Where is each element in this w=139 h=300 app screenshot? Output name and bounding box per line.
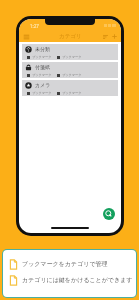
button[interactable]: Sort <box>102 33 109 40</box>
button[interactable]: 付箋紙 <box>22 62 118 78</box>
staticText: ブックマークをカテゴリで管理 <box>22 260 108 268</box>
staticText: ブックマーク <box>32 55 52 59</box>
button[interactable]: Menu <box>23 33 30 40</box>
staticText: ブックマーク <box>62 55 82 59</box>
staticText: カテゴリ <box>59 33 82 40</box>
button[interactable]: Add <box>111 33 118 40</box>
button[interactable]: 未分類 <box>22 44 118 60</box>
staticText: ブックマーク <box>32 73 52 77</box>
staticText: ブックマーク <box>62 91 82 95</box>
staticText: カメラ <box>35 82 51 88</box>
button[interactable]: Search <box>103 208 115 220</box>
staticText: ブックマーク <box>32 91 52 95</box>
button[interactable]: ブックマークをカテゴリで管理 <box>3 256 136 272</box>
staticText: カテゴリには鍵をかけることができます <box>22 276 133 284</box>
staticText: 1:27 <box>30 23 39 29</box>
staticText: 未分類 <box>35 46 50 52</box>
staticText: 付箋紙 <box>35 64 50 70</box>
button[interactable]: カメラ <box>22 80 118 96</box>
button[interactable]: カテゴリには鍵をかけることができます <box>3 272 136 288</box>
staticText: ブックマーク <box>62 73 82 77</box>
